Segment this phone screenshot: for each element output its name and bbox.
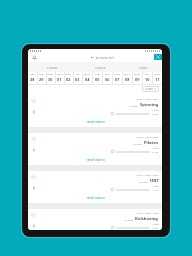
button[interactable]: רביעי <box>122 71 132 84</box>
button[interactable]: Favourite <box>31 175 36 179</box>
staticText: אולם 1 <box>152 185 159 188</box>
button[interactable]: צפה ב <box>142 86 159 92</box>
button[interactable]: לוח שיעורים <box>91 55 115 60</box>
staticText: Pilates <box>144 140 159 146</box>
button[interactable]: Previous <box>32 148 36 152</box>
staticText: שבת <box>95 73 100 76</box>
staticText: הרשמה לשיעור <box>86 158 105 162</box>
staticText: 03 <box>75 77 80 82</box>
staticText: 07 <box>115 77 120 82</box>
staticText: ראשון <box>84 73 91 76</box>
staticText: צפה ב <box>145 87 153 91</box>
staticText: שלישי <box>65 73 72 76</box>
staticText: רביעי <box>124 73 130 76</box>
staticText: ראשון <box>154 73 161 76</box>
staticText: אולם 1 <box>152 147 159 150</box>
button[interactable]: חמישי <box>112 71 122 84</box>
button[interactable]: הרשמה לשיעור <box>82 195 109 201</box>
button[interactable]: Previous <box>32 186 36 190</box>
button[interactable]: Favourite <box>28 171 162 203</box>
staticText: ראשון | 18:00 | 60 דק <box>136 136 159 139</box>
staticText: 05 <box>95 77 100 82</box>
staticText: Kickboxing <box>135 216 159 222</box>
staticText: שישי <box>105 73 110 76</box>
staticText: 30 <box>48 77 53 82</box>
staticText: שני <box>76 73 80 76</box>
staticText: שבת <box>30 73 35 76</box>
button[interactable]: Favourite <box>28 209 162 230</box>
staticText: מאמן: דני <box>124 219 134 222</box>
button[interactable]: Favourite <box>28 133 162 165</box>
staticText: חמישי <box>47 73 54 76</box>
button[interactable]: שבת <box>28 71 37 84</box>
staticText: מאמן: דני <box>133 143 143 146</box>
button[interactable]: Favourite <box>31 137 36 141</box>
staticText: 01 <box>57 77 62 82</box>
button[interactable]: חמישי <box>46 71 55 84</box>
button[interactable]: Previous <box>32 224 36 228</box>
staticText: ראשון | 18:00 | 60 דק <box>136 212 159 215</box>
staticText: 28 <box>30 77 35 82</box>
staticText: שני <box>145 73 149 76</box>
button[interactable]: Previous <box>32 110 36 114</box>
staticText: נובמבר <box>124 66 162 69</box>
button[interactable]: רביעי <box>55 71 64 84</box>
staticText: 04 <box>85 77 90 82</box>
staticText: ראשון | 18:00 | 60 דק <box>136 98 159 101</box>
staticText: אולם 1 <box>152 223 159 226</box>
staticText: 3 / 20 <box>152 150 159 153</box>
staticText: HIIT <box>150 178 159 184</box>
button[interactable]: Favourite <box>31 99 36 103</box>
button[interactable]: שלישי <box>132 71 142 84</box>
staticText: 06 <box>105 77 110 82</box>
staticText: מאמן: דני <box>129 105 139 108</box>
button[interactable]: שבת <box>92 71 102 84</box>
staticText: 5 / 20 <box>152 226 159 229</box>
staticText: הרשמה לשיעור <box>86 196 105 200</box>
button[interactable]: Notifications <box>30 53 38 61</box>
staticText: 11 <box>155 77 160 82</box>
staticText: חמישי <box>114 73 121 76</box>
staticText: 10 <box>145 77 150 82</box>
staticText: אוקטובר <box>76 66 124 69</box>
button[interactable]: שני <box>142 71 152 84</box>
staticText: רביעי <box>57 73 63 76</box>
button[interactable]: שישי <box>37 71 46 84</box>
button[interactable]: שלישי <box>64 71 73 84</box>
staticText: ספטמבר <box>28 66 76 69</box>
staticText: 09 <box>135 77 140 82</box>
button[interactable]: ראשון <box>152 71 162 84</box>
button[interactable]: הרשמה לשיעור <box>82 119 109 125</box>
button[interactable]: הרשמה לשיעור <box>82 157 109 163</box>
button[interactable]: Favourite <box>31 213 36 217</box>
staticText: מאמן: דני <box>139 181 149 184</box>
button[interactable]: Favourite <box>28 95 162 127</box>
staticText: 08 <box>125 77 130 82</box>
staticText: לוח שיעורים <box>96 55 115 60</box>
button[interactable]: Fullscreen <box>154 54 162 60</box>
staticText: ראשון | 18:00 | 60 דק <box>136 174 159 177</box>
staticText: 29 <box>39 77 44 82</box>
staticText: אולם 1 <box>152 109 159 112</box>
staticText: שלישי <box>134 73 141 76</box>
staticText: הרשמה לשיעור <box>86 120 105 124</box>
staticText: 1 / 20 <box>152 188 159 191</box>
staticText: 0 / 20 <box>152 112 159 115</box>
button[interactable]: ראשון <box>82 71 92 84</box>
staticText: שישי <box>39 73 44 76</box>
button[interactable]: שני <box>73 71 82 84</box>
staticText: Spinning <box>140 102 159 108</box>
staticText: 02 <box>66 77 71 82</box>
button[interactable]: שישי <box>102 71 112 84</box>
